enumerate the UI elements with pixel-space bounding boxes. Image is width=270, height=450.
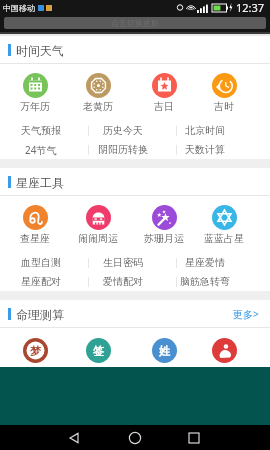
staticText: 查星座 xyxy=(20,232,50,245)
button[interactable]: 24节气 xyxy=(0,140,82,159)
staticText: 时间天气 xyxy=(16,43,64,58)
staticText: 老黄历 xyxy=(83,100,113,113)
button[interactable]: 梦 xyxy=(7,338,63,378)
staticText: 点击切换皮肤 xyxy=(111,18,159,28)
button[interactable]: 吉时 xyxy=(196,73,252,113)
button[interactable]: 天气预报 xyxy=(0,121,82,140)
staticText: 中国移动 xyxy=(3,3,35,13)
staticText: 更多> xyxy=(233,307,259,321)
button[interactable]: 闹闹周运 xyxy=(70,205,126,245)
button[interactable]: 血型自测 xyxy=(0,253,82,272)
staticText: 命理测算 xyxy=(16,307,64,322)
button[interactable]: 查星座 xyxy=(7,205,63,245)
staticText: 闹闹周运 xyxy=(78,232,118,245)
staticText: 12:37 xyxy=(236,0,265,15)
staticText: 吉时 xyxy=(214,100,234,113)
button[interactable]: Back xyxy=(64,428,84,448)
staticText: 阴阳历转换 xyxy=(98,143,148,156)
button[interactable]: 蓝蓝占星 xyxy=(196,205,252,245)
staticText: 吉日 xyxy=(154,100,174,113)
staticText: 梦 xyxy=(30,344,41,358)
button[interactable]: 天数计算 xyxy=(164,140,246,159)
button[interactable]: 万年历 xyxy=(7,73,63,113)
button[interactable]: 老黄历 xyxy=(70,73,126,113)
staticText: 血型自测 xyxy=(21,256,61,269)
button[interactable]: 更多> xyxy=(224,300,270,328)
button[interactable]: 生日密码 xyxy=(82,253,164,272)
staticText: 苏珊月运 xyxy=(144,232,184,245)
button[interactable]: 星座爱情 xyxy=(164,253,246,272)
button[interactable]: 爱情配对 xyxy=(82,272,164,291)
staticText: 历史今天 xyxy=(103,124,143,137)
button[interactable]: 历史今天 xyxy=(82,121,164,140)
staticText: 蓝蓝占星 xyxy=(204,232,244,245)
staticText: 签 xyxy=(93,344,104,358)
button[interactable]: 签 xyxy=(70,338,126,378)
button[interactable]: 阴阳历转换 xyxy=(82,140,164,159)
button[interactable] xyxy=(196,338,252,378)
staticText: 天气预报 xyxy=(21,124,61,137)
staticText: 爱情配对 xyxy=(103,275,143,288)
button[interactable]: 北京时间 xyxy=(164,121,246,140)
button[interactable]: 吉日 xyxy=(136,73,192,113)
staticText: 北京时间 xyxy=(185,124,225,137)
staticText: 天数计算 xyxy=(185,143,225,156)
staticText: 星座工具 xyxy=(16,175,64,190)
staticText: 生日密码 xyxy=(103,256,143,269)
staticText: 姓 xyxy=(159,344,170,358)
staticText: 万年历 xyxy=(20,100,50,113)
button[interactable]: Home xyxy=(125,428,145,448)
staticText: 星座爱情 xyxy=(185,256,225,269)
staticText: 24节气 xyxy=(25,143,57,157)
button[interactable]: 姓 xyxy=(136,338,192,378)
button[interactable]: 苏珊月运 xyxy=(136,205,192,245)
button[interactable]: Recents xyxy=(184,428,204,448)
staticText: 星座配对 xyxy=(21,275,61,288)
staticText: 脑筋急转弯 xyxy=(180,275,230,288)
button[interactable]: 脑筋急转弯 xyxy=(164,272,246,291)
button[interactable]: 星座配对 xyxy=(0,272,82,291)
